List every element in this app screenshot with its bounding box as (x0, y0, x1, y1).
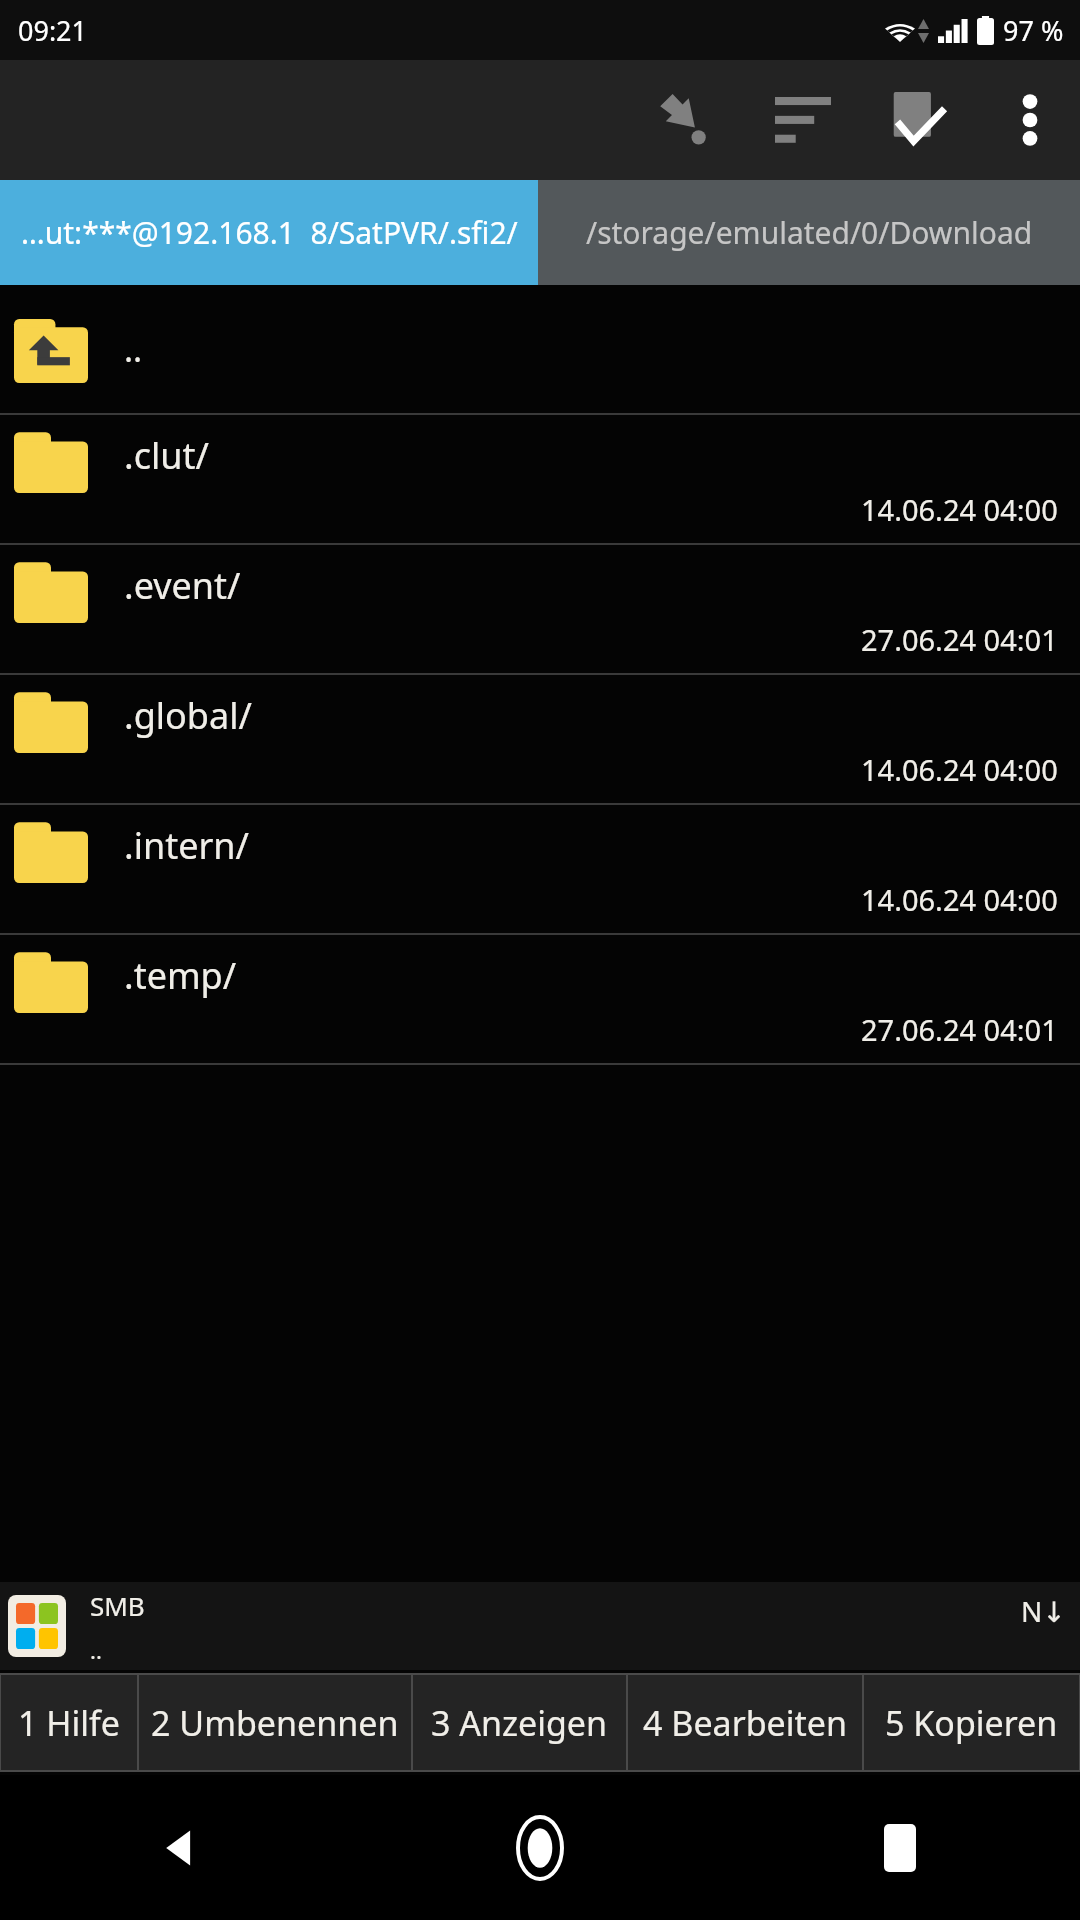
button[interactable]: /storage/emulated/0/Download (538, 180, 1080, 285)
button[interactable]: Back (0, 1775, 360, 1920)
staticText: 27.06.24 04:01 (861, 1010, 1058, 1049)
button[interactable]: .temp/ (0, 935, 1080, 1063)
button[interactable]: .. (0, 285, 1080, 413)
button[interactable]: .event/ (0, 545, 1080, 673)
button[interactable]: 5 Kopieren (863, 1674, 1080, 1771)
staticText: .event/ (124, 561, 241, 610)
staticText: 4 Bearbeiten (643, 1700, 847, 1746)
staticText: 27.06.24 04:01 (861, 620, 1058, 659)
staticText: 3 Anzeigen (431, 1700, 608, 1746)
staticText: .global/ (124, 691, 252, 740)
button[interactable]: Recent apps (720, 1775, 1080, 1920)
button[interactable]: .clut/ (0, 415, 1080, 543)
staticText: …ut:***@192.168.1 8/SatPVR/.sfi2/ (21, 212, 518, 253)
staticText: .clut/ (124, 431, 209, 480)
button[interactable]: 4 Bearbeiten (627, 1674, 863, 1771)
button[interactable]: SMB connection (8, 1595, 66, 1657)
staticText: .. (124, 326, 143, 372)
button[interactable]: Move (626, 60, 744, 180)
button[interactable]: 3 Anzeigen (412, 1674, 627, 1771)
button[interactable]: …ut:***@192.168.1 8/SatPVR/.sfi2/ (0, 180, 538, 285)
button[interactable]: Home (360, 1775, 720, 1920)
button[interactable]: 2 Umbenennen (138, 1674, 412, 1771)
staticText: 2 Umbenennen (151, 1700, 399, 1746)
button[interactable]: .intern/ (0, 805, 1080, 933)
staticText: .intern/ (124, 821, 249, 870)
staticText: 09:21 (18, 12, 88, 49)
staticText: 14.06.24 04:00 (861, 880, 1058, 919)
button[interactable]: Sort (744, 60, 862, 180)
staticText: 14.06.24 04:00 (861, 490, 1058, 529)
button[interactable]: 1 Hilfe (0, 1674, 138, 1771)
staticText: N↓ (1021, 1592, 1066, 1630)
staticText: /storage/emulated/0/Download (586, 212, 1033, 253)
staticText: .. (90, 1635, 102, 1665)
staticText: 14.06.24 04:00 (861, 750, 1058, 789)
staticText: 1 Hilfe (18, 1700, 120, 1746)
button[interactable]: Select (862, 60, 980, 180)
button[interactable]: More options (980, 60, 1080, 180)
staticText: 5 Kopieren (885, 1700, 1058, 1746)
staticText: 97 % (1003, 12, 1064, 49)
button[interactable]: .global/ (0, 675, 1080, 803)
staticText: .temp/ (124, 951, 237, 1000)
staticText: SMB (90, 1588, 145, 1623)
